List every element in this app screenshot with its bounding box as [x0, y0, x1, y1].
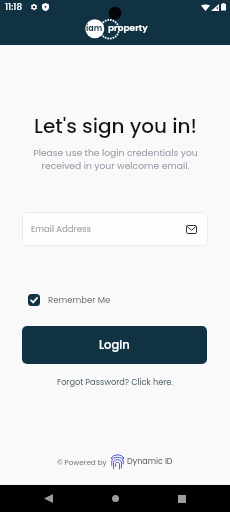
button[interactable]: Email Address: [22, 212, 208, 246]
button[interactable]: Forgot Password? Click here.: [53, 374, 178, 389]
button[interactable]: Recent apps: [160, 485, 204, 512]
staticText: © Powered by: [57, 457, 107, 467]
button[interactable]: Back: [26, 485, 70, 512]
staticText: property: [108, 22, 148, 35]
staticText: Email Address: [31, 223, 91, 235]
button[interactable]: Home: [93, 485, 137, 512]
staticText: Remember Me: [48, 294, 111, 306]
button[interactable]: Login: [22, 326, 207, 364]
staticText: Forgot Password? Click here.: [57, 376, 174, 387]
staticText: Let's sign you in!: [34, 112, 197, 140]
staticText: Login: [99, 337, 130, 353]
staticText: Dynamic ID: [127, 456, 173, 467]
staticText: Please use the login credentials you rec…: [33, 146, 198, 172]
staticText: 11:18: [5, 1, 23, 13]
button[interactable]: Remember Me: [28, 294, 115, 306]
staticText: iam: [86, 23, 103, 34]
